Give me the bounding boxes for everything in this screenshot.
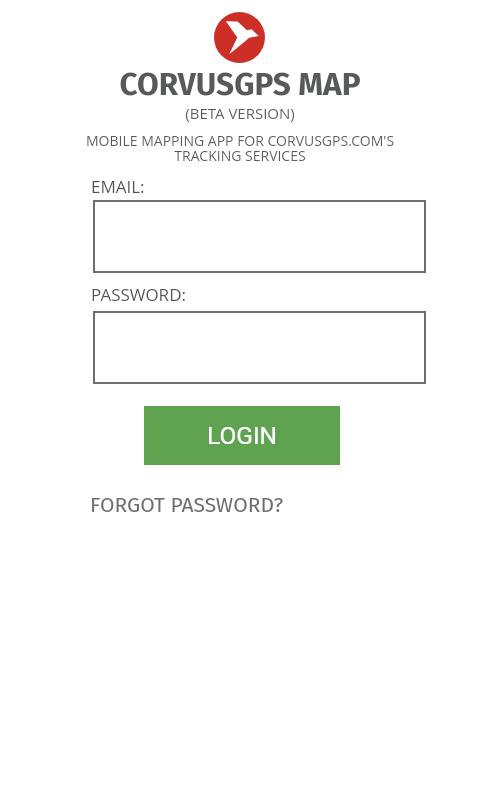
- button[interactable]: FORGOT PASSWORD?: [90, 492, 284, 517]
- staticText: PASSWORD:: [91, 283, 187, 306]
- staticText: LOGIN: [207, 421, 278, 450]
- staticText: (BETA VERSION): [0, 103, 480, 123]
- staticText: CORVUSGPS MAP: [0, 66, 480, 104]
- button[interactable]: [93, 200, 426, 273]
- button[interactable]: LOGIN: [144, 406, 340, 465]
- staticText: MOBILE MAPPING APP FOR CORVUSGPS.COM'S T…: [0, 131, 480, 165]
- staticText: EMAIL:: [91, 175, 145, 198]
- button[interactable]: [93, 311, 426, 384]
